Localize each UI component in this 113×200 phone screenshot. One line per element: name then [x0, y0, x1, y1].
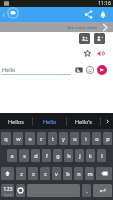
button[interactable]: Emoji [86, 66, 94, 74]
button[interactable]: d [31, 149, 40, 162]
staticText: . [86, 187, 88, 194]
button[interactable]: f [42, 149, 51, 162]
staticText: 11:16 [98, 0, 111, 7]
button[interactable]: 123 [1, 184, 14, 197]
staticText: t [52, 135, 54, 142]
staticText: Hello's [75, 118, 92, 125]
button[interactable]: Favorite [84, 50, 91, 57]
staticText: m [87, 170, 93, 177]
button[interactable]: u [70, 132, 79, 145]
button[interactable]: More suggestions [101, 113, 113, 129]
button[interactable]: See more chats [0, 22, 113, 32]
staticText: a [10, 152, 14, 159]
button[interactable]: b [63, 167, 72, 180]
button[interactable]: Contact [7, 7, 19, 19]
button[interactable]: Settings [16, 184, 25, 197]
staticText: u [73, 135, 77, 142]
button[interactable]: j [75, 149, 84, 162]
button[interactable]: p [103, 132, 112, 145]
button[interactable]: q [1, 132, 11, 145]
button[interactable]: Hello [33, 113, 66, 129]
button[interactable]: . [82, 184, 91, 197]
staticText: n [77, 170, 81, 177]
button[interactable]: t [48, 132, 57, 145]
button[interactable]: Share [81, 7, 95, 22]
button[interactable]: Backspace [96, 167, 112, 180]
button[interactable]: Enter [93, 184, 112, 197]
button[interactable]: o [92, 132, 101, 145]
button[interactable]: Add people [79, 33, 90, 44]
button[interactable]: Attach image [75, 66, 83, 74]
staticText: y [62, 135, 65, 142]
button[interactable]: Sound [97, 50, 104, 57]
button[interactable]: v [52, 167, 61, 180]
button[interactable]: Send [97, 65, 107, 75]
staticText: h [67, 152, 71, 159]
staticText: See more chats [67, 25, 98, 31]
button[interactable]: h [64, 149, 73, 162]
button[interactable]: a [7, 149, 17, 162]
button[interactable]: Back [0, 7, 7, 22]
staticText: g [56, 152, 60, 159]
button[interactable]: w [13, 132, 23, 145]
staticText: s [23, 152, 26, 159]
button[interactable]: k [86, 149, 95, 162]
button[interactable]: Contact card [94, 33, 105, 44]
staticText: Hellos [8, 118, 24, 125]
button[interactable]: Shift [1, 167, 14, 180]
button[interactable]: e [25, 132, 35, 145]
button[interactable]: z [16, 167, 26, 180]
button[interactable]: Hellos [0, 113, 32, 129]
staticText: w [16, 135, 21, 142]
staticText: i [85, 135, 87, 142]
staticText: l [101, 152, 103, 159]
staticText: Sym [4, 192, 12, 197]
button[interactable]: i [81, 132, 90, 145]
staticText: p [106, 135, 110, 142]
staticText: Hello [2, 66, 16, 73]
button[interactable]: s [19, 149, 29, 162]
staticText: v [55, 170, 58, 177]
staticText: z [20, 170, 23, 177]
staticText: r [40, 135, 43, 142]
staticText: o [95, 135, 99, 142]
staticText: c [44, 170, 47, 177]
button[interactable]: x [28, 167, 38, 180]
staticText: k [89, 152, 92, 159]
button[interactable]: r [37, 132, 46, 145]
staticText: x [32, 170, 35, 177]
button[interactable]: y [59, 132, 68, 145]
staticText: Hello [43, 118, 57, 125]
staticText: e [28, 135, 32, 142]
staticText: b [66, 170, 70, 177]
button[interactable]: Hello's [67, 113, 100, 129]
staticText: 123 [3, 185, 13, 192]
button[interactable]: n [74, 167, 83, 180]
staticText: f [46, 152, 48, 159]
button[interactable]: g [53, 149, 62, 162]
button[interactable]: Notifications [96, 7, 110, 22]
staticText: q [4, 135, 8, 142]
button[interactable]: l [97, 149, 106, 162]
staticText: j [79, 152, 81, 159]
button[interactable]: m [85, 167, 94, 180]
button[interactable]: c [40, 167, 50, 180]
staticText: d [34, 152, 38, 159]
